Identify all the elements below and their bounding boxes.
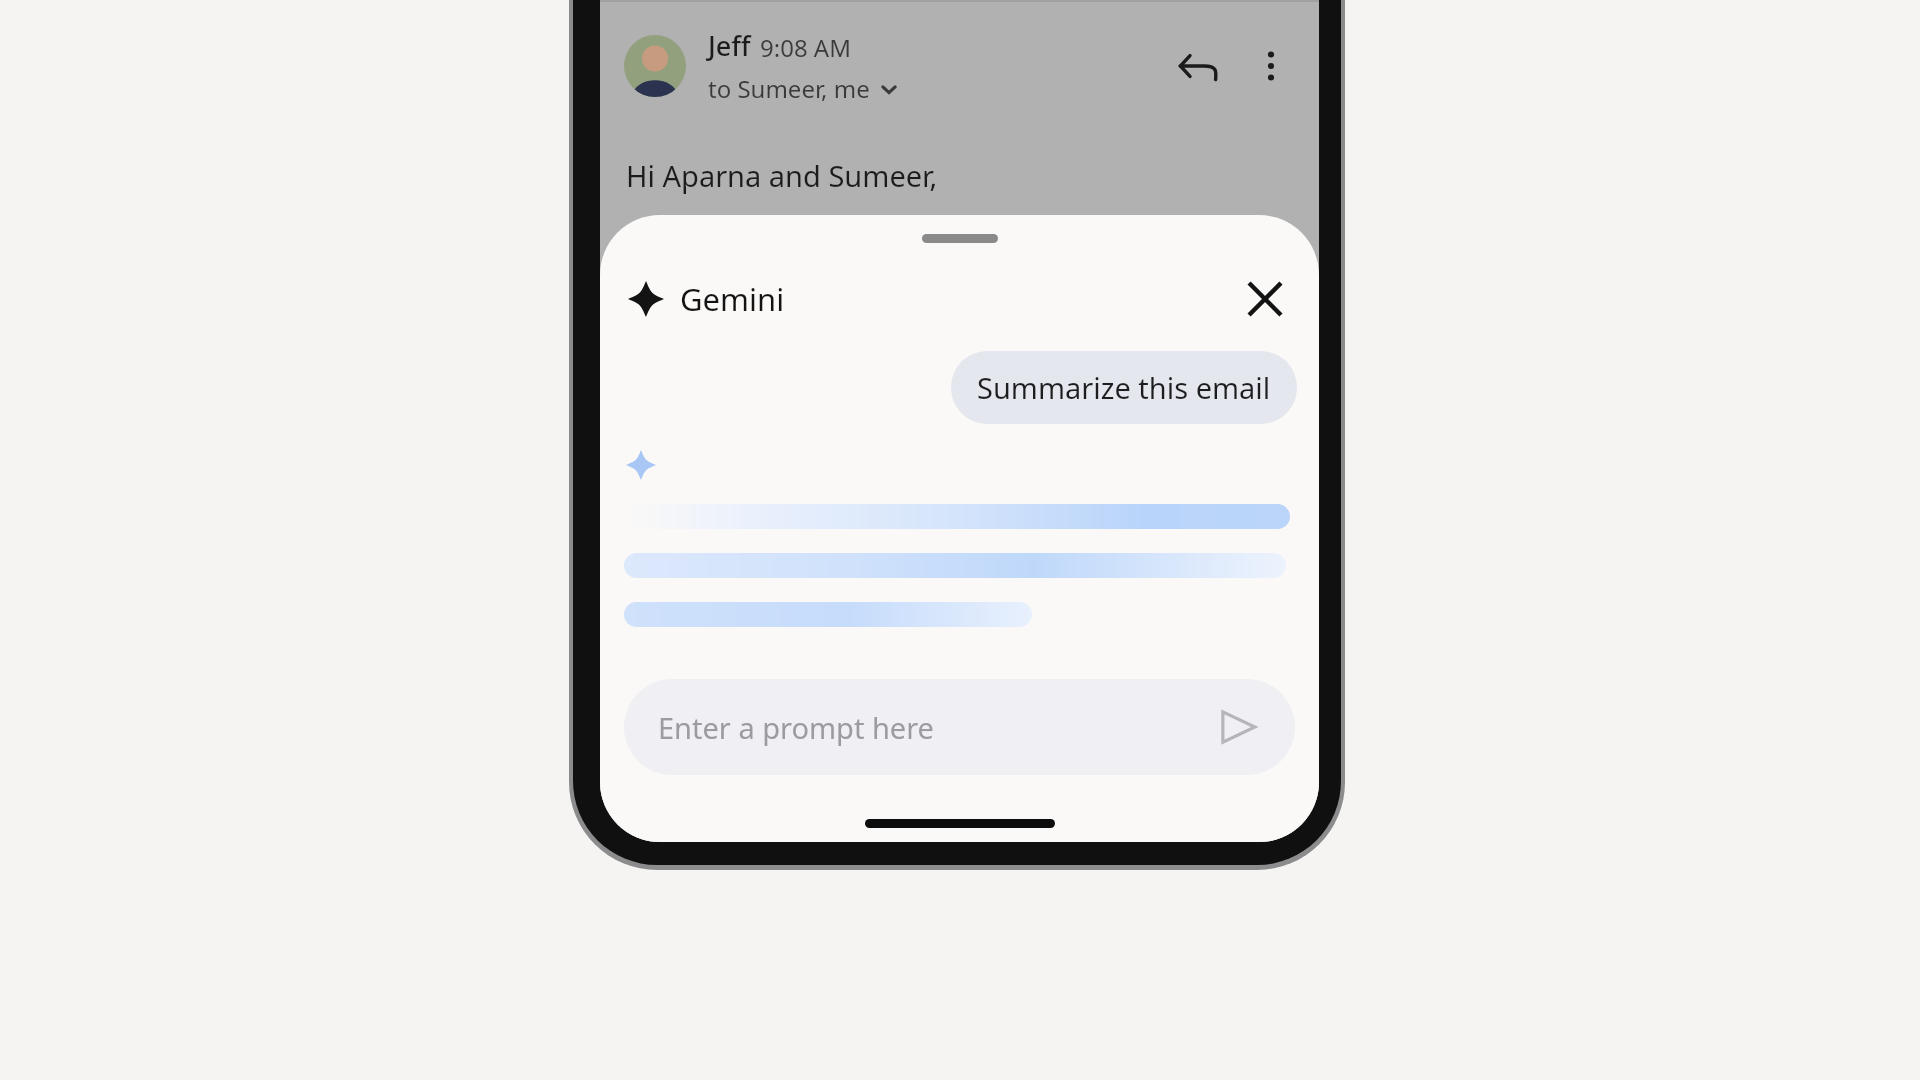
staticText: Gemini	[680, 278, 785, 320]
button[interactable]: Enter a prompt here	[624, 679, 1295, 775]
button[interactable]: More options	[1245, 40, 1297, 92]
button[interactable]: Jeff	[600, 2, 1319, 130]
button[interactable]: Reply	[1169, 37, 1227, 95]
button[interactable]: Summarize this email	[951, 351, 1297, 424]
staticText: Hi Aparna and Sumeer,	[626, 156, 938, 195]
button[interactable]: Send	[1211, 700, 1265, 754]
staticText: to Sumeer, me	[708, 72, 870, 105]
staticText: Summarize this email	[977, 368, 1271, 407]
staticText: Enter a prompt here	[658, 708, 934, 747]
button[interactable]: Close	[1233, 267, 1297, 331]
staticText: Jeff	[708, 27, 751, 64]
staticText: 9:08 AM	[760, 31, 851, 64]
button[interactable]: Gemini	[628, 278, 785, 320]
